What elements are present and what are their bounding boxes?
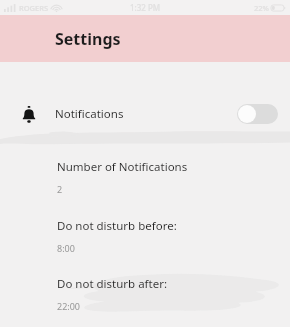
staticText: 2 [57,183,63,195]
staticText: Do not disturb after: [57,276,168,292]
staticText: Do not disturb before: [57,218,177,234]
button[interactable]: Notifications [0,100,290,128]
staticText: 8:00 [57,242,75,254]
staticText: 22% [254,3,269,13]
button[interactable]: Do not disturb after: [0,276,290,312]
staticText: 1:32 PM [130,2,161,13]
button[interactable]: Toggle notifications [237,104,278,124]
staticText: 22:00 [57,300,81,312]
button[interactable]: Do not disturb before: [0,218,290,254]
staticText: Settings [55,28,121,50]
staticText: Notifications [55,106,124,122]
staticText: ROGERS [19,3,49,13]
button[interactable]: Number of Notifications [0,159,290,195]
staticText: Number of Notifications [57,159,188,175]
